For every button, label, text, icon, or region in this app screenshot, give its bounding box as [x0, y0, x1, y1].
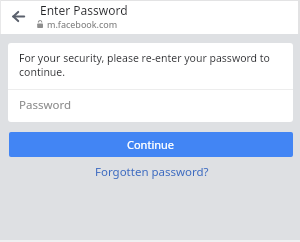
staticText: Forgotten password?: [95, 164, 209, 180]
button[interactable]: Forgotten password?: [92, 162, 212, 182]
staticText: m.facebook.com: [47, 18, 118, 30]
staticText: For your security, please re-enter your …: [19, 51, 274, 79]
staticText: Enter Password: [40, 2, 128, 18]
staticText: Password: [19, 97, 72, 113]
button[interactable]: Continue: [9, 132, 293, 157]
button[interactable]: Password: [8, 90, 293, 121]
staticText: Continue: [127, 137, 175, 152]
button[interactable]: Back: [9, 5, 31, 27]
